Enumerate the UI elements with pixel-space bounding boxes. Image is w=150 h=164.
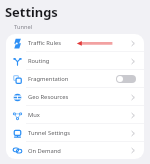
button[interactable]: Mux: [6, 106, 144, 124]
staticText: Routing: [28, 57, 50, 65]
staticText: Traffic Rules: [28, 39, 61, 47]
button[interactable]: Traffic Rules: [6, 34, 144, 52]
staticText: Fragmentation: [28, 75, 69, 83]
button[interactable]: Fragmentation: [6, 70, 144, 88]
button[interactable]: On Demand: [6, 142, 144, 159]
button[interactable]: Routing: [6, 52, 144, 70]
staticText: Tunnel: [14, 23, 33, 31]
staticText: On Demand: [28, 147, 61, 155]
staticText: Settings: [5, 3, 58, 21]
button[interactable]: Tunnel Settings: [6, 124, 144, 142]
button[interactable]: Geo Resources: [6, 88, 144, 106]
staticText: Mux: [28, 111, 40, 119]
staticText: Geo Resources: [28, 93, 69, 101]
staticText: Tunnel Settings: [28, 129, 71, 137]
